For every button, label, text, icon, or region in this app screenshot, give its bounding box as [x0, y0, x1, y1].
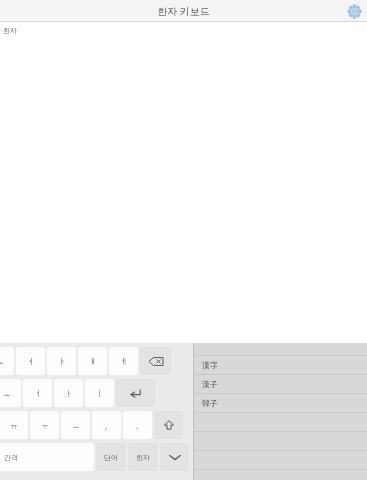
button[interactable]: ㅕ [16, 347, 45, 375]
button[interactable]: . [123, 411, 152, 439]
staticText: 간격 [4, 453, 18, 462]
button[interactable] [193, 450, 367, 469]
button[interactable]: 한자 [128, 443, 158, 471]
button[interactable]: ㅣ [85, 379, 114, 407]
button[interactable]: ㅑ [47, 347, 76, 375]
button[interactable]: Shift [154, 411, 183, 439]
button[interactable]: Enter [116, 379, 155, 407]
staticText: ㅏ [65, 388, 73, 398]
staticText: ㅛ [0, 356, 4, 366]
button[interactable]: ㅜ [30, 411, 59, 439]
button[interactable]: Hide keyboard [160, 443, 189, 471]
button[interactable] [193, 412, 367, 431]
button[interactable]: Settings [346, 3, 362, 19]
staticText: ㅑ [58, 356, 66, 366]
staticText: ㅜ [41, 420, 49, 430]
button[interactable]: ㅠ [0, 411, 28, 439]
button[interactable]: Backspace [140, 347, 171, 375]
staticText: 한자 [136, 453, 150, 462]
staticText: ㅗ [3, 388, 11, 398]
staticText: 韓子 [202, 398, 218, 408]
staticText: ㅓ [34, 388, 42, 398]
button[interactable]: , [92, 411, 121, 439]
staticText: 漢子 [202, 379, 218, 389]
button[interactable]: 韓子 [193, 393, 367, 412]
staticText: ㅐ [89, 356, 97, 366]
staticText: ㅕ [27, 356, 35, 366]
staticText: 한자 키보드 [0, 4, 367, 18]
button[interactable] [193, 431, 367, 450]
button[interactable]: ㅗ [0, 379, 21, 407]
button[interactable] [193, 469, 367, 480]
button[interactable]: ㅐ [78, 347, 107, 375]
button[interactable]: 간격 [0, 443, 94, 471]
staticText: 단어 [104, 453, 118, 462]
button[interactable]: ㅔ [109, 347, 138, 375]
staticText: ㅣ [96, 388, 104, 398]
button[interactable]: ㅏ [54, 379, 83, 407]
button[interactable]: ㅛ [0, 347, 14, 375]
button[interactable]: ㅡ [61, 411, 90, 439]
button[interactable]: 단어 [96, 443, 126, 471]
staticText: ㅠ [10, 420, 18, 430]
staticText: ㅡ [72, 420, 80, 430]
button[interactable]: ㅓ [23, 379, 52, 407]
staticText: . [136, 420, 139, 431]
button[interactable]: 漢子 [193, 374, 367, 393]
staticText: ㅔ [120, 356, 128, 366]
staticText: 한자 [3, 26, 17, 35]
button[interactable]: 漢字 [193, 355, 367, 374]
staticText: 漢字 [202, 360, 218, 370]
staticText: , [105, 420, 108, 431]
